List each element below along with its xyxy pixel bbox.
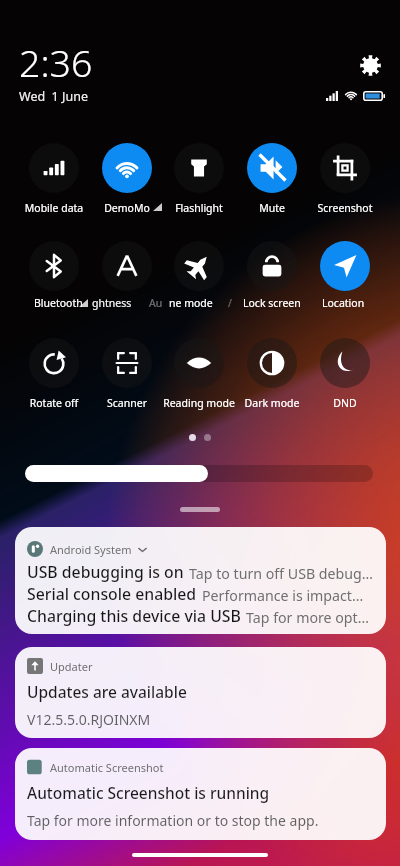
staticText: Android System [50,542,132,557]
staticText: 2:36 [19,37,93,88]
staticText: Bluetooth [34,296,83,310]
staticText: Charging this device via USB [27,605,241,627]
staticText: ghtness [92,296,132,310]
button[interactable]: Updater [15,647,386,738]
button[interactable] [163,241,235,299]
button[interactable] [309,241,381,299]
staticText: Flashlight [163,201,235,215]
button[interactable] [18,241,90,299]
staticText: ne mode [169,296,213,310]
staticText: Tap for more information or to stop the … [27,811,319,830]
staticText: Serial console enabled [27,583,197,605]
staticText: Lock screen [243,296,301,310]
staticText: Mobile data [18,201,90,215]
staticText: Automatic Screenshot is running [27,782,270,803]
staticText: Reading mode [163,396,235,410]
staticText: Mute [236,201,308,215]
staticText: Updater [50,659,93,674]
button[interactable] [236,241,308,299]
staticText: Scanner [91,396,163,410]
staticText: Performance is impact… [202,586,364,605]
button[interactable]: Rotate off [18,338,90,410]
staticText: Tap for more opt… [246,608,369,627]
button[interactable]: DND [309,338,381,410]
button[interactable]: Mute [236,143,308,215]
staticText: Automatic Screenshot [50,760,164,775]
staticText: DND [309,396,381,410]
staticText: V12.5.5.0.RJOINXM [27,710,151,729]
button[interactable]: Android System [15,527,386,634]
button[interactable]: DemoMo [91,143,163,215]
button[interactable] [91,241,163,299]
button[interactable]: Mobile data [18,143,90,215]
staticText: Wed 1 June [19,88,88,105]
staticText: Location [322,296,365,310]
staticText: Updates are available [27,681,187,702]
button[interactable]: Scanner [91,338,163,410]
staticText: Dark mode [236,396,308,410]
button[interactable]: Screenshot [309,143,381,215]
staticText: USB debugging is on [27,561,184,583]
staticText: Rotate off [18,396,90,410]
staticText: DemoMo [91,201,163,215]
staticText: Screenshot [309,201,381,215]
button[interactable]: Automatic Screenshot [15,748,386,840]
button[interactable]: Reading mode [163,338,235,410]
button[interactable]: Flashlight [163,143,235,215]
staticText: / [228,296,232,310]
staticText: Tap to turn off USB debug… [189,564,373,583]
button[interactable] [25,465,373,482]
button[interactable]: Dark mode [236,338,308,410]
button[interactable]: Settings [355,50,385,80]
staticText: Au [149,296,163,310]
